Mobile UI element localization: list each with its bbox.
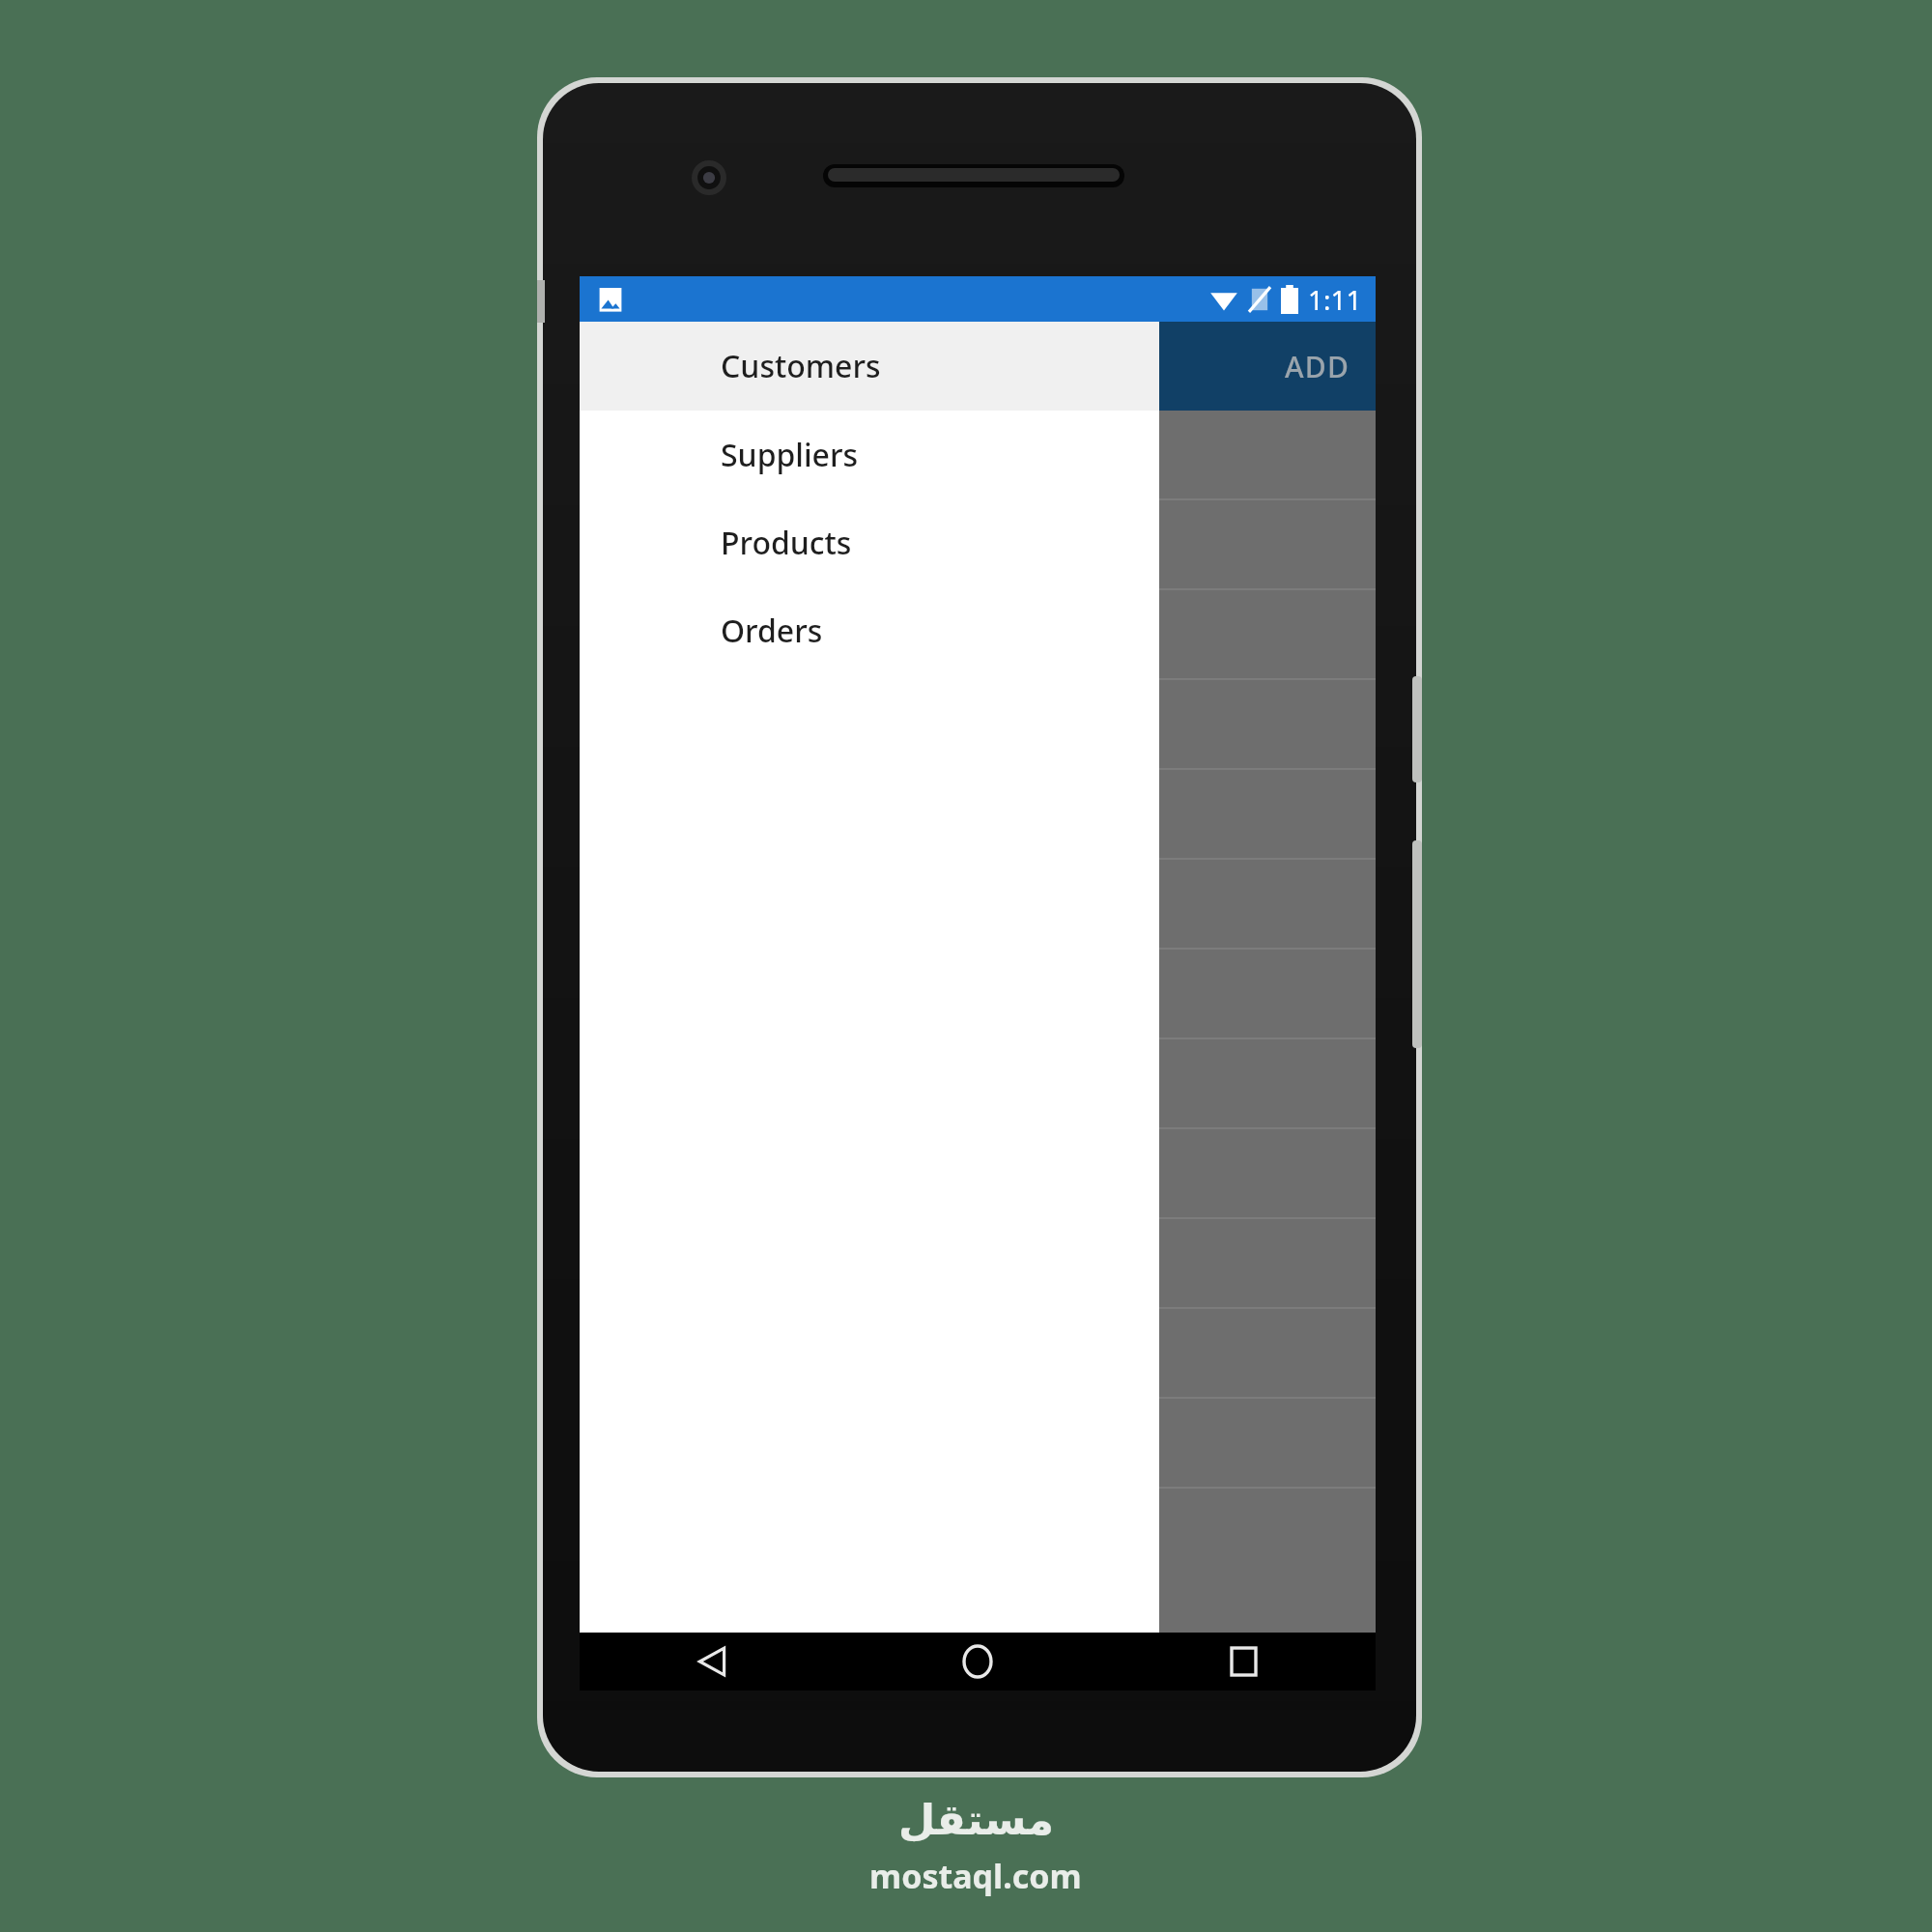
staticText: مستقل (898, 1795, 1054, 1844)
button[interactable]: PhoneNum (580, 411, 1376, 498)
button[interactable]: 0560781580 (580, 590, 1376, 678)
button[interactable]: 0560781580 (580, 680, 1376, 768)
staticText: mostaql.com (869, 1854, 1082, 1898)
button[interactable]: 0560781580 (580, 1219, 1376, 1307)
staticText: Customers (721, 345, 881, 387)
button[interactable]: 0560781580 (580, 770, 1376, 858)
button[interactable]: Orders (580, 586, 1159, 674)
staticText: Suppliers (721, 434, 859, 476)
button[interactable]: 0560781580 (580, 860, 1376, 948)
button[interactable]: Back (682, 1633, 742, 1690)
button[interactable]: 0560781580 (580, 1039, 1376, 1127)
button[interactable]: 0560781580 (580, 1309, 1376, 1397)
button[interactable]: Customers (580, 322, 1159, 411)
button[interactable]: 0560781580 (580, 1399, 1376, 1487)
button[interactable]: Suppliers (580, 411, 1159, 498)
button[interactable]: Products (580, 498, 1159, 586)
button[interactable]: ADD (1260, 329, 1376, 404)
button[interactable]: 0560781580 (580, 1129, 1376, 1217)
button[interactable]: 0560781580 (580, 500, 1376, 588)
button[interactable]: Recent apps (1213, 1633, 1273, 1690)
staticText: 1:11 (1308, 281, 1362, 318)
staticText: Orders (721, 610, 823, 652)
staticText: Products (721, 522, 852, 564)
button[interactable]: 0560781580 (580, 950, 1376, 1037)
staticText: ADD (1285, 347, 1350, 386)
button[interactable]: Home (948, 1633, 1008, 1690)
